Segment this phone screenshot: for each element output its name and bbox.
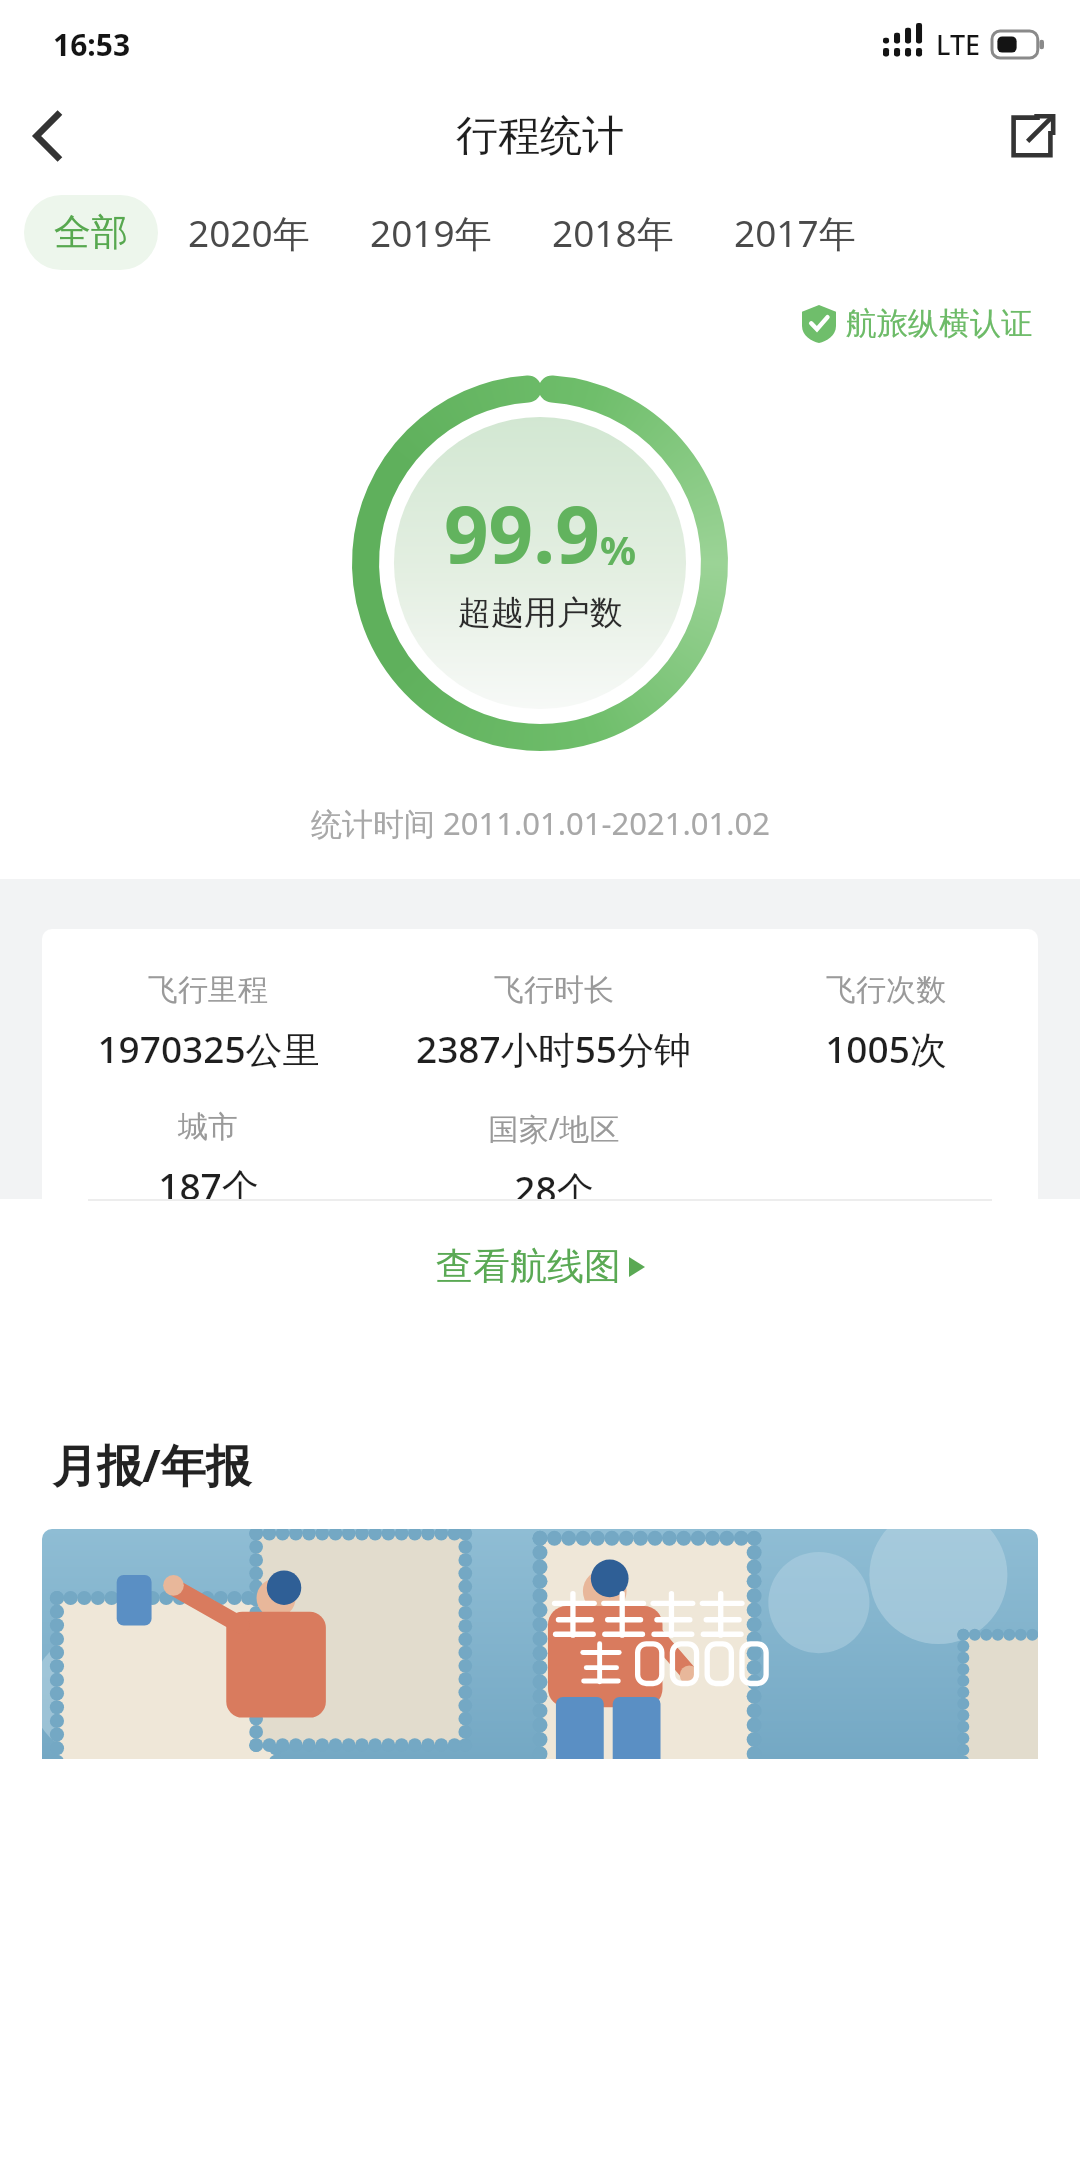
button[interactable]: 飞越不凡的2020 月报 <box>42 1529 1038 1759</box>
staticText: LTE <box>936 26 981 63</box>
button[interactable]: 航旅纵横认证 <box>802 304 1032 343</box>
button[interactable]: 2018年 <box>522 193 704 272</box>
staticText: % <box>600 522 637 576</box>
staticText: 航旅纵横认证 <box>846 304 1032 343</box>
staticText: 16:53 <box>53 24 131 65</box>
staticText: 2017年 <box>734 207 856 258</box>
button[interactable]: 全部 <box>24 195 158 270</box>
button[interactable]: 2020年 <box>158 193 340 272</box>
staticText: 超越用户数 <box>458 592 623 634</box>
staticText: 28个 <box>514 1163 594 1199</box>
staticText: 全部 <box>54 209 128 256</box>
button[interactable]: 2017年 <box>704 193 886 272</box>
staticText: 飞行里程 <box>148 971 268 1009</box>
staticText: 飞行时长 <box>494 971 614 1009</box>
button[interactable]: 2019年 <box>340 193 522 272</box>
staticText: 国家/地区 <box>488 1108 620 1149</box>
button[interactable]: Back <box>0 88 96 184</box>
button[interactable]: Share <box>984 88 1080 184</box>
staticText: 2018年 <box>552 207 674 258</box>
staticText: 2019年 <box>370 207 492 258</box>
staticText: 99.9 <box>444 480 600 586</box>
staticText: 城市 <box>178 1108 238 1146</box>
staticText: 查看航线图 <box>436 1243 621 1290</box>
staticText: 187个 <box>158 1160 259 1199</box>
staticText: 1970325公里 <box>97 1023 320 1074</box>
button[interactable]: 飞行里程 <box>42 929 1038 1199</box>
staticText: 统计时间 2011.01.01-2021.01.02 <box>311 802 770 844</box>
staticText: 1005次 <box>825 1023 947 1074</box>
staticText: 2020年 <box>188 207 310 258</box>
staticText: 月报/年报 <box>52 1434 251 1495</box>
button[interactable]: 查看航线图 <box>42 1201 1038 1331</box>
staticText: 2387小时55分钟 <box>416 1023 691 1074</box>
staticText: 行程统计 <box>456 110 624 163</box>
staticText: 飞行次数 <box>826 971 946 1009</box>
